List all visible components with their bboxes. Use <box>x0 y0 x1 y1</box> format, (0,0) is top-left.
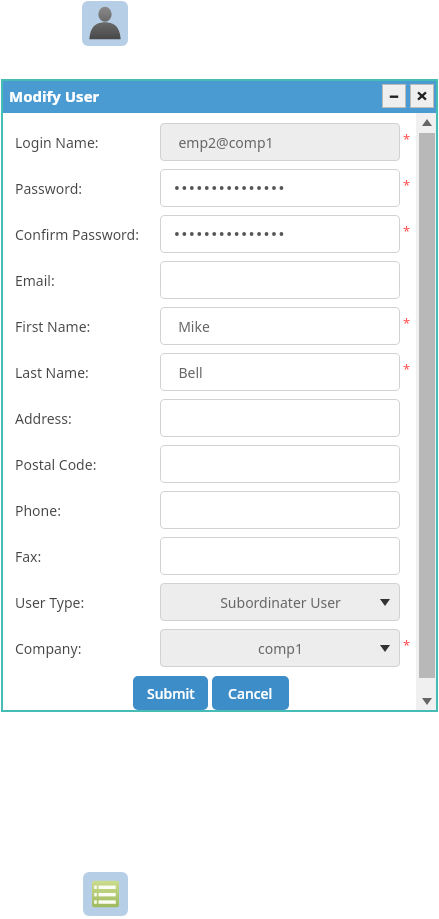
staticText: * <box>403 222 411 240</box>
button[interactable]: emp2@comp1 <box>160 123 400 161</box>
staticText: * <box>403 130 411 148</box>
staticText: First Name: <box>15 317 91 336</box>
staticText: Address: <box>15 409 72 428</box>
staticText: Subordinater User <box>220 593 341 612</box>
button[interactable] <box>160 537 400 575</box>
staticText: Password: <box>15 179 83 198</box>
staticText: Company: <box>15 639 82 658</box>
staticText: * <box>403 176 411 194</box>
button[interactable]: Minimize <box>382 84 406 108</box>
staticText: Fax: <box>15 547 42 566</box>
staticText: Bell <box>178 363 203 382</box>
button[interactable]: Submit <box>133 676 208 710</box>
staticText: Cancel <box>228 684 273 703</box>
button[interactable]: Scroll up <box>416 113 438 131</box>
button[interactable]: Mike <box>160 307 400 345</box>
staticText: Modify User <box>9 86 100 106</box>
button[interactable]: User <box>82 1 128 46</box>
button[interactable]: Subordinater User <box>160 583 400 621</box>
staticText: Last Name: <box>15 363 89 382</box>
button[interactable] <box>160 261 400 299</box>
staticText: emp2@comp1 <box>178 133 274 152</box>
staticText: Mike <box>178 317 210 336</box>
staticText: Confirm Password: <box>15 225 139 244</box>
staticText: Email: <box>15 271 55 290</box>
staticText: Postal Code: <box>15 455 97 474</box>
button[interactable]: Cancel <box>212 676 289 710</box>
button[interactable]: List <box>83 872 128 916</box>
staticText: Login Name: <box>15 133 99 152</box>
button[interactable] <box>160 399 400 437</box>
button[interactable]: comp1 <box>160 629 400 667</box>
button[interactable]: Bell <box>160 353 400 391</box>
button[interactable] <box>160 491 400 529</box>
button[interactable]: Close <box>410 84 434 108</box>
button[interactable] <box>160 169 400 207</box>
staticText: Phone: <box>15 501 61 520</box>
staticText: * <box>403 360 411 378</box>
button[interactable]: Scroll down <box>416 692 438 710</box>
staticText: * <box>403 636 411 654</box>
staticText: * <box>403 314 411 332</box>
staticText: User Type: <box>15 593 85 612</box>
staticText: Submit <box>147 684 195 703</box>
staticText: comp1 <box>258 639 303 658</box>
button[interactable] <box>160 445 400 483</box>
button[interactable] <box>160 215 400 253</box>
